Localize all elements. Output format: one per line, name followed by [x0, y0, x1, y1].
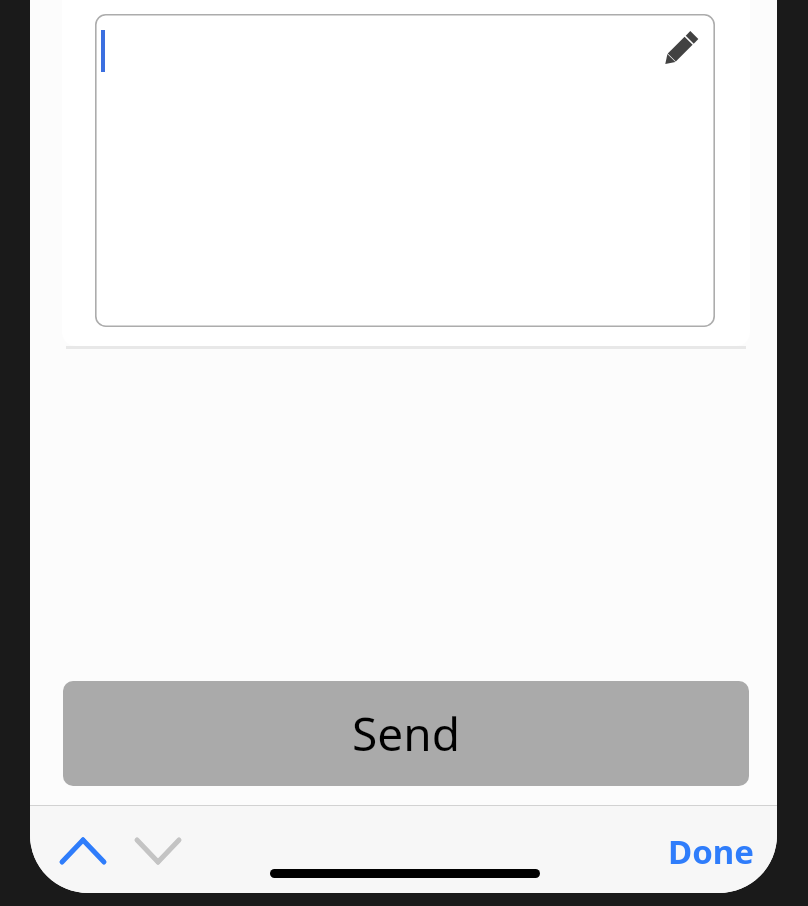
staticText: Done	[668, 829, 754, 874]
staticText: Send	[352, 702, 460, 765]
button[interactable]: Edit	[95, 14, 715, 327]
button[interactable]: Previous field	[52, 828, 114, 876]
button[interactable]: Done	[650, 824, 772, 878]
button[interactable]: Send	[63, 681, 749, 786]
button[interactable]: Edit	[653, 22, 707, 76]
button[interactable]: Next field	[127, 828, 189, 876]
